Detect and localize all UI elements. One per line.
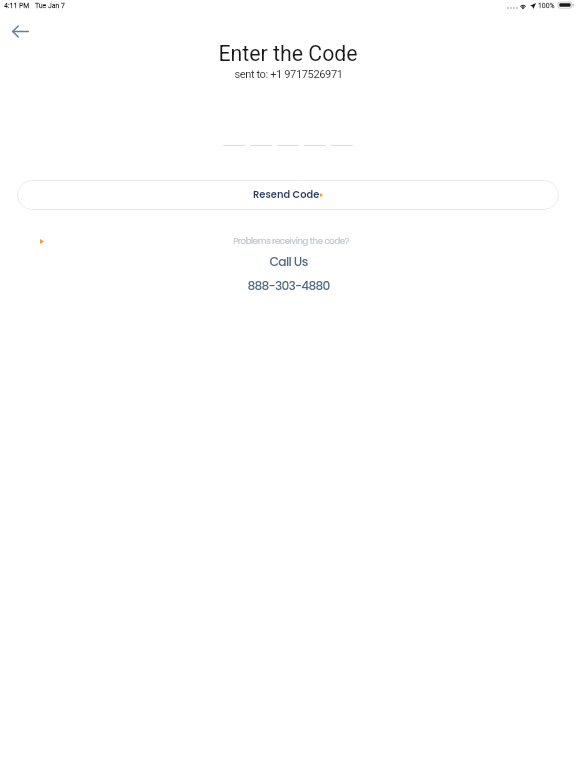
- button[interactable]: Call Us: [265, 252, 312, 271]
- staticText: Resend Code: [253, 188, 320, 202]
- button[interactable]: Back: [4, 19, 36, 44]
- button[interactable]: Resend Code: [17, 180, 559, 210]
- staticText: Problems receiving the code?: [233, 235, 349, 247]
- button[interactable]: 888-303-4880: [243, 276, 334, 295]
- staticText: 888-303-4880: [247, 277, 330, 294]
- staticText: sent to: +1 9717526971: [234, 68, 343, 81]
- staticText: 4:11 PM: [4, 2, 30, 10]
- staticText: Tue Jan 7: [35, 2, 65, 10]
- staticText: Enter the Code: [218, 41, 358, 66]
- staticText: 100%: [538, 2, 555, 10]
- staticText: Call Us: [269, 253, 308, 270]
